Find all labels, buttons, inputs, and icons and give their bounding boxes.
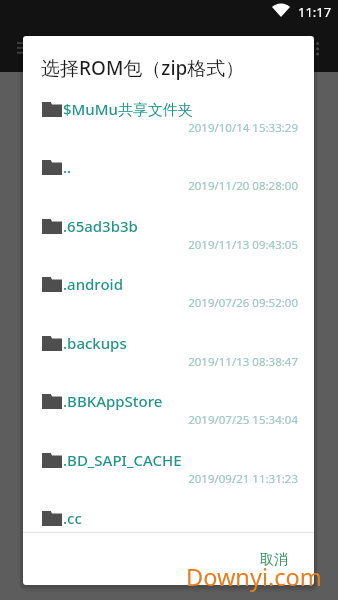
staticText: 11:17 xyxy=(298,3,332,21)
staticText: $MuMu共享文件夹 xyxy=(63,99,193,119)
button[interactable]: .65ad3b3b xyxy=(23,215,314,274)
staticText: .BD_SAPI_CACHE xyxy=(63,450,182,470)
staticText: 2019/07/26 09:52:00 xyxy=(23,295,298,311)
button[interactable]: .android xyxy=(23,273,314,332)
staticText: .BBKAppStore xyxy=(63,391,163,411)
staticText: .backups xyxy=(63,333,127,353)
staticText: .android xyxy=(63,274,123,294)
staticText: Downyi.com xyxy=(186,561,322,593)
staticText: 2019/07/25 15:34:04 xyxy=(23,412,298,428)
button[interactable]: .BD_SAPI_CACHE xyxy=(23,449,314,508)
button[interactable]: .BBKAppStore xyxy=(23,390,314,449)
staticText: 2019/11/13 08:38:47 xyxy=(23,354,298,370)
button[interactable]: Menu xyxy=(6,30,30,54)
button[interactable]: .backups xyxy=(23,332,314,391)
button[interactable]: .. xyxy=(23,156,314,215)
staticText: .65ad3b3b xyxy=(63,216,138,236)
staticText: 2019/11/20 08:28:00 xyxy=(23,178,298,194)
staticText: .. xyxy=(63,157,72,177)
button[interactable]: $MuMu共享文件夹 xyxy=(23,98,314,157)
staticText: 选择ROM包（zip格式） xyxy=(41,55,245,81)
staticText: .cc xyxy=(63,508,82,528)
button[interactable]: More options xyxy=(306,32,330,56)
staticText: 2019/10/14 15:33:29 xyxy=(23,120,298,136)
staticText: 2019/09/21 11:31:23 xyxy=(23,471,298,487)
button[interactable]: .cc xyxy=(23,507,314,566)
staticText: 取消 xyxy=(260,551,288,569)
button[interactable]: 取消 xyxy=(250,543,298,577)
staticText: 2019/11/13 09:43:05 xyxy=(23,237,298,253)
